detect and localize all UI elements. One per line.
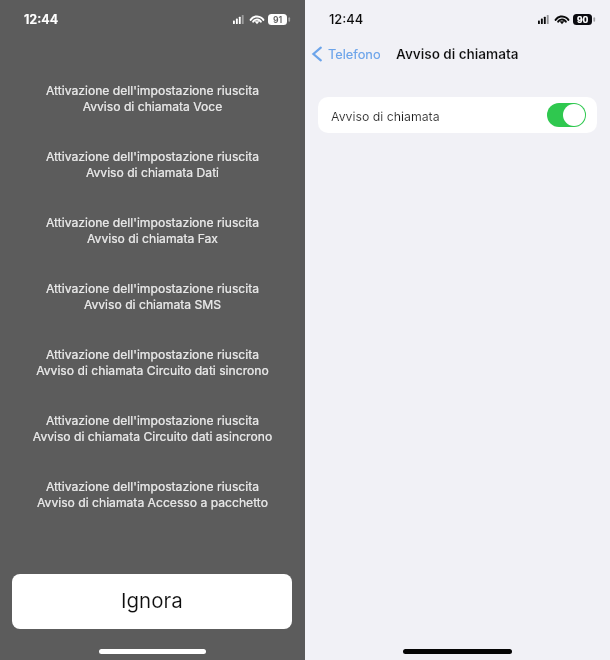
staticText: 90: [577, 15, 589, 25]
staticText: Telefono: [328, 47, 381, 62]
staticText: Attivazione dell'impostazione riuscita A…: [0, 479, 305, 510]
staticText: Attivazione dell'impostazione riuscita A…: [0, 215, 305, 246]
staticText: Avviso di chiamata: [396, 46, 519, 62]
button[interactable]: Avviso di chiamata: [318, 97, 597, 133]
button[interactable]: Ignora: [12, 574, 292, 629]
staticText: Attivazione dell'impostazione riuscita A…: [0, 413, 305, 444]
staticText: Attivazione dell'impostazione riuscita A…: [0, 347, 305, 378]
button[interactable]: Telefono: [310, 46, 383, 62]
staticText: Attivazione dell'impostazione riuscita A…: [0, 149, 305, 180]
button[interactable]: Avviso di chiamata: [547, 103, 586, 127]
staticText: 12:44: [24, 12, 59, 27]
staticText: Attivazione dell'impostazione riuscita A…: [0, 83, 305, 114]
staticText: Avviso di chiamata: [331, 109, 440, 124]
staticText: 12:44: [329, 12, 364, 27]
staticText: Ignora: [121, 588, 183, 613]
staticText: Attivazione dell'impostazione riuscita A…: [0, 281, 305, 312]
staticText: 91: [273, 15, 283, 25]
